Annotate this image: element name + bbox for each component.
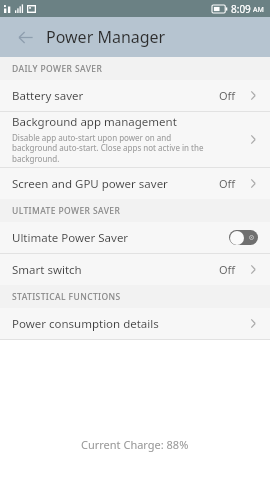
staticText: Off xyxy=(219,176,236,191)
staticText: Ultimate Power Saver xyxy=(12,230,229,246)
staticText: Power Manager xyxy=(46,26,166,48)
staticText: Disable app auto-start upon power on and… xyxy=(12,132,204,165)
staticText: Power consumption details xyxy=(12,316,245,332)
other: Ultimate Power Saver toggle xyxy=(229,230,258,245)
staticText: ULTIMATE POWER SAVER xyxy=(12,205,121,217)
staticText: DAILY POWER SAVER xyxy=(12,63,103,75)
button[interactable]: Background app management xyxy=(0,112,270,167)
staticText: Background app management xyxy=(12,114,177,130)
staticText: STATISTICAL FUNCTIONS xyxy=(12,291,121,303)
button[interactable]: Screen and GPU power saver xyxy=(0,168,270,199)
staticText: Battery saver xyxy=(12,88,219,104)
staticText: 8:09 xyxy=(231,2,251,16)
staticText: Current Charge: 88% xyxy=(81,437,189,452)
button[interactable]: Power consumption details xyxy=(0,308,270,339)
button[interactable]: Smart switch xyxy=(0,254,270,285)
button[interactable]: Back xyxy=(8,20,42,54)
staticText: Off xyxy=(219,88,236,103)
staticText: Off xyxy=(219,262,236,277)
button[interactable]: Battery saver xyxy=(0,80,270,111)
staticText: Screen and GPU power saver xyxy=(12,176,219,192)
staticText: Smart switch xyxy=(12,262,219,278)
button[interactable]: Ultimate Power Saver xyxy=(0,222,270,253)
staticText: AM xyxy=(253,5,264,15)
